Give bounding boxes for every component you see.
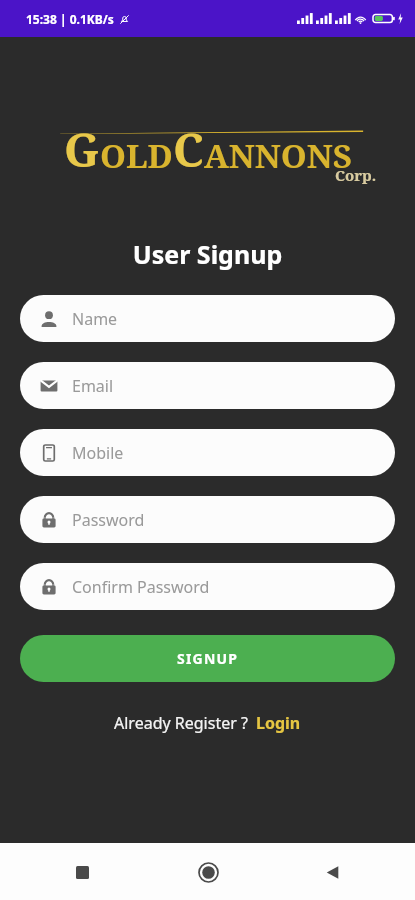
button[interactable]: Password [20, 496, 395, 543]
staticText: Confirm Password [72, 576, 210, 598]
staticText: Login [256, 712, 301, 734]
staticText: Corp. [335, 165, 377, 185]
staticText: 15:38 | 0.1KB/s [26, 11, 114, 27]
button[interactable]: SIGNUP [20, 635, 395, 682]
button[interactable]: Login [256, 712, 301, 734]
button[interactable]: Recent apps [60, 850, 104, 894]
staticText: Password [72, 509, 145, 531]
button[interactable]: Confirm Password [20, 563, 395, 610]
staticText: User Signup [0, 237, 415, 271]
staticText: SIGNUP [177, 649, 239, 668]
staticText: OLD [100, 133, 173, 178]
staticText: C [173, 118, 204, 181]
button[interactable]: Mobile [20, 429, 395, 476]
staticText: G [64, 118, 100, 181]
button[interactable]: Back [311, 850, 355, 894]
button[interactable]: Name [20, 295, 395, 342]
staticText: Name [72, 308, 118, 330]
staticText: ANNONS [204, 133, 352, 178]
button[interactable]: Home [186, 850, 230, 894]
staticText: Email [72, 375, 114, 397]
button[interactable]: Email [20, 362, 395, 409]
staticText: Mobile [72, 442, 124, 464]
staticText: Already Register ? [114, 712, 248, 734]
